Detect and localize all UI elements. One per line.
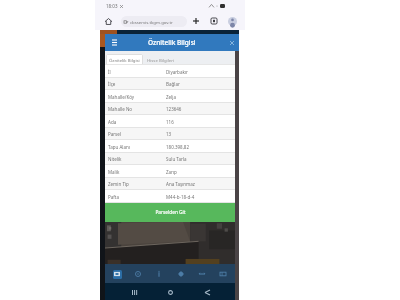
button[interactable]: Map: [214, 265, 232, 283]
staticText: Sulu Tarla: [166, 156, 187, 162]
button[interactable]: Nitelik: [105, 153, 235, 165]
staticText: Zemin Tip: [108, 181, 129, 187]
button[interactable]: Mahalle/Köy: [105, 90, 235, 103]
button[interactable]: Locate: [129, 265, 147, 283]
button[interactable]: Zemin Tip: [105, 178, 235, 190]
staticText: Bağlar: [166, 81, 180, 87]
staticText: Parsel: [108, 131, 121, 137]
staticText: Diyarbakır: [166, 69, 188, 75]
button[interactable]: Info: [150, 265, 168, 283]
staticText: Parselden Git: [155, 209, 186, 216]
staticText: Ada: [108, 119, 117, 125]
staticText: Tapu Alanı: [108, 144, 130, 150]
button[interactable]: Ada: [105, 115, 235, 128]
button[interactable]: Back: [199, 284, 215, 300]
staticText: İl: [108, 69, 111, 75]
button[interactable]: Close: [226, 37, 238, 49]
button[interactable]: İlçe: [105, 78, 235, 90]
button[interactable]: Pafta: [105, 190, 235, 203]
button[interactable]: Öznitelik Bilgisi: [106, 54, 143, 65]
staticText: Malik: [108, 169, 120, 175]
button[interactable]: Mahalle No: [105, 103, 235, 115]
staticText: Ana Taşınmaz: [166, 181, 195, 187]
staticText: Zarıp: [166, 169, 177, 175]
staticText: Nitelik: [108, 156, 122, 162]
button[interactable]: Tabs: [208, 15, 220, 27]
button[interactable]: cbsservis.tkgm.gov.tr: [121, 16, 187, 27]
staticText: 123646: [166, 106, 182, 112]
staticText: Hisse Bilgileri: [147, 57, 175, 63]
button[interactable]: New tab: [190, 15, 202, 27]
staticText: M44-b-18-d-4: [166, 194, 195, 200]
staticText: Mahalle No: [108, 106, 133, 112]
button[interactable]: Menu: [108, 36, 121, 49]
button[interactable]: Measure: [193, 265, 211, 283]
staticText: Mahalle/Köy: [108, 94, 135, 100]
button[interactable]: Tapu Alanı: [105, 140, 235, 153]
staticText: Zelja: [166, 94, 176, 100]
staticText: 180.398,82: [166, 144, 190, 150]
button[interactable]: Home: [162, 284, 178, 300]
staticText: 116: [166, 119, 174, 125]
staticText: Öznitelik Bilgisi: [109, 57, 140, 63]
button[interactable]: Malik: [105, 165, 235, 178]
button[interactable]: Recents: [126, 284, 142, 300]
button[interactable]: Favorite: [172, 265, 190, 283]
staticText: Pafta: [108, 194, 119, 200]
button[interactable]: Hisse Bilgileri: [144, 54, 178, 65]
staticText: İlçe: [108, 81, 116, 87]
button[interactable]: Parsel: [105, 128, 235, 140]
button[interactable]: More options: [226, 15, 238, 27]
staticText: cbsservis.tkgm.gov.tr: [130, 19, 173, 25]
button[interactable]: Home: [101, 14, 115, 28]
button[interactable]: Parselden Git: [105, 203, 235, 222]
staticText: 13: [166, 131, 172, 137]
staticText: Öznitelik Bilgisi: [148, 38, 196, 47]
button[interactable]: Layers: [108, 265, 126, 283]
button[interactable]: İl: [105, 65, 235, 78]
staticText: 18:03: [106, 3, 118, 9]
